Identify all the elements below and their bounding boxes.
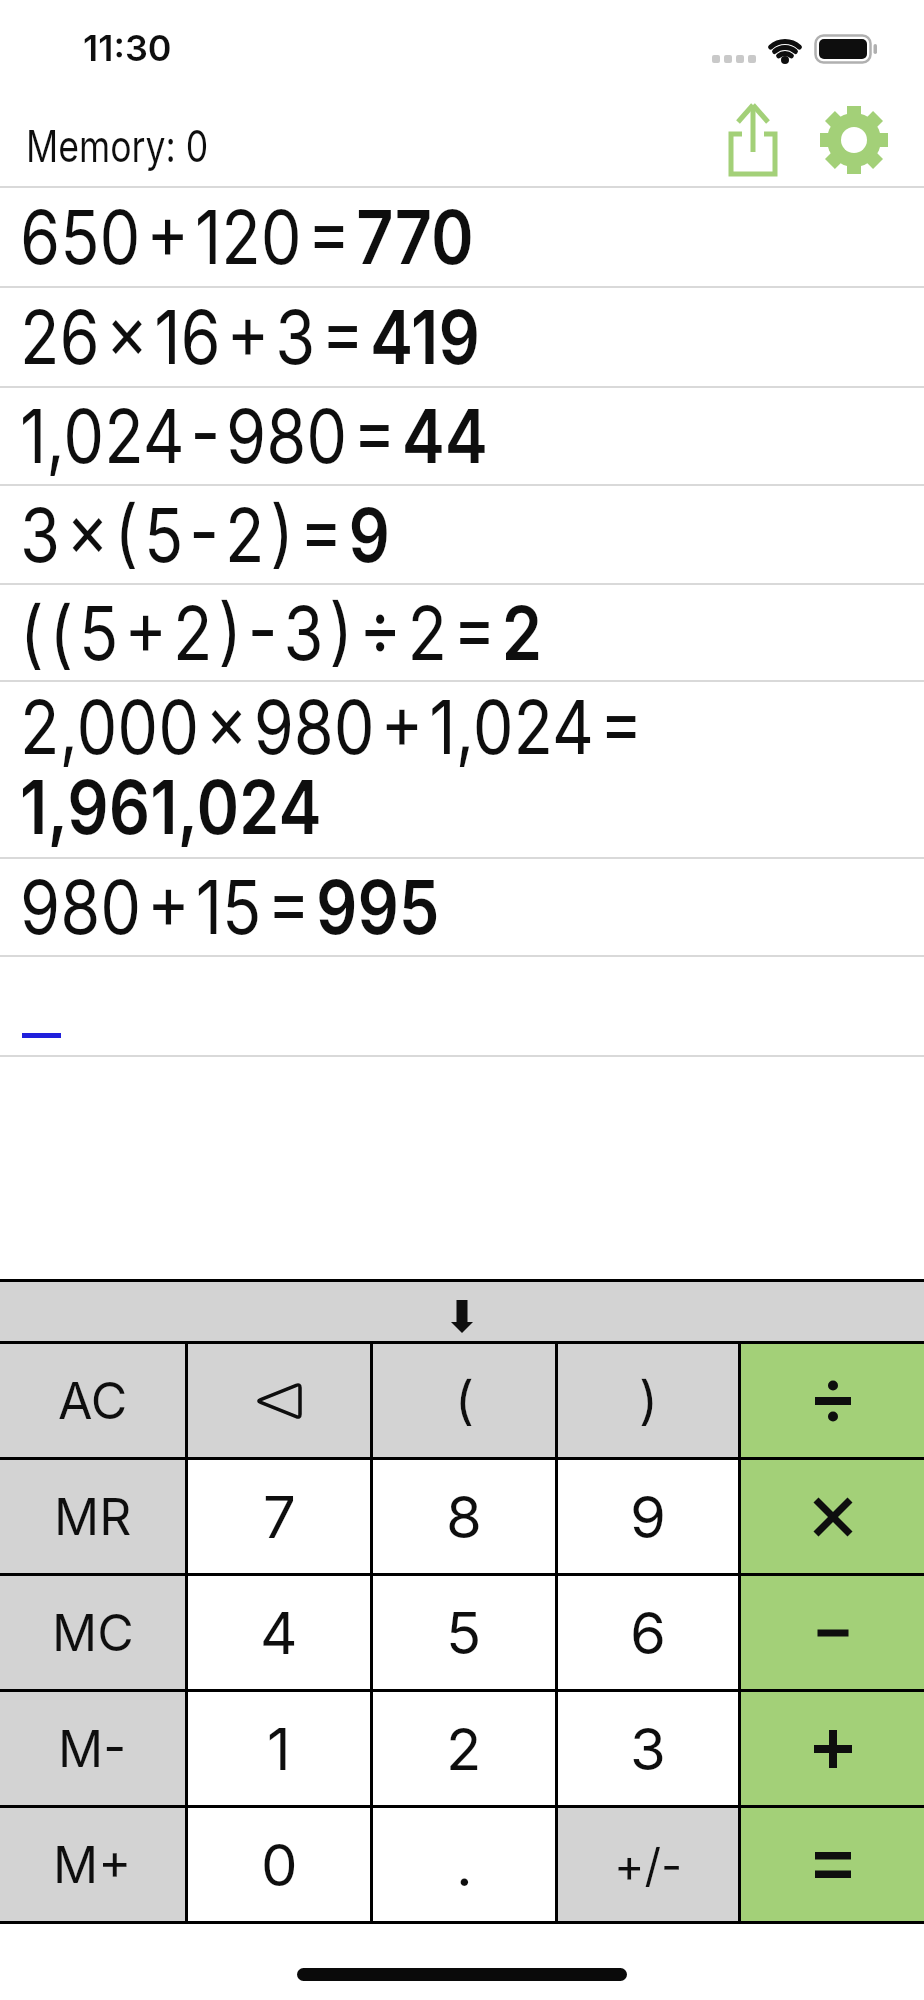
staticText: 3: [630, 1714, 666, 1784]
button[interactable]: [741, 1692, 924, 1805]
staticText: 2,000 × 980 + 1,024 =: [20, 682, 643, 770]
staticText: 9: [630, 1482, 666, 1552]
button[interactable]: 0: [188, 1808, 370, 1921]
staticText: M+: [53, 1835, 132, 1895]
button[interactable]: 2: [373, 1692, 555, 1805]
button[interactable]: [0, 1282, 924, 1341]
staticText: 2: [446, 1714, 482, 1784]
button[interactable]: 5: [373, 1576, 555, 1689]
staticText: 26 × 16 + 3 = 419: [20, 292, 480, 382]
staticText: +/-: [614, 1837, 683, 1893]
button[interactable]: [188, 1344, 370, 1457]
staticText: MR: [54, 1487, 132, 1547]
staticText: 5: [446, 1598, 482, 1668]
staticText: ): [639, 1369, 658, 1432]
button[interactable]: 9: [558, 1460, 738, 1573]
staticText: AC: [58, 1371, 128, 1431]
staticText: ( ( 5 + 2 ) - 3 ) ÷ 2 = 2: [20, 588, 542, 678]
button[interactable]: [741, 1460, 924, 1573]
button[interactable]: M+: [0, 1808, 185, 1921]
button[interactable]: 7: [188, 1460, 370, 1573]
button[interactable]: 3: [558, 1692, 738, 1805]
button[interactable]: .: [373, 1808, 555, 1921]
staticText: (: [455, 1369, 474, 1432]
staticText: 11:30: [83, 26, 172, 70]
staticText: 0: [261, 1830, 298, 1900]
button[interactable]: [741, 1344, 924, 1457]
staticText: 980 + 15 = 995: [20, 862, 440, 952]
staticText: 3 × ( 5 - 2 ) = 9: [20, 490, 390, 580]
staticText: 1: [267, 1714, 291, 1784]
button[interactable]: 4: [188, 1576, 370, 1689]
button[interactable]: MC: [0, 1576, 185, 1689]
button[interactable]: [725, 102, 781, 182]
staticText: Memory: 0: [26, 119, 209, 172]
button[interactable]: ): [558, 1344, 738, 1457]
button[interactable]: AC: [0, 1344, 185, 1457]
staticText: MC: [52, 1603, 134, 1663]
button[interactable]: 8: [373, 1460, 555, 1573]
staticText: 1,024 - 980 = 44: [20, 391, 488, 481]
staticText: 7: [263, 1482, 296, 1552]
button[interactable]: (: [373, 1344, 555, 1457]
staticText: 1,961,024: [20, 762, 322, 847]
button[interactable]: +/-: [558, 1808, 738, 1921]
staticText: M-: [58, 1719, 127, 1779]
staticText: 650 + 120 = 770: [20, 192, 474, 282]
button[interactable]: M-: [0, 1692, 185, 1805]
button[interactable]: MR: [0, 1460, 185, 1573]
staticText: .: [456, 1830, 473, 1900]
staticText: 4: [260, 1598, 298, 1668]
button[interactable]: [741, 1808, 924, 1921]
staticText: 6: [630, 1598, 666, 1668]
button[interactable]: [818, 104, 890, 176]
button[interactable]: 1: [188, 1692, 370, 1805]
button[interactable]: [741, 1576, 924, 1689]
staticText: 8: [446, 1482, 482, 1552]
button[interactable]: 6: [558, 1576, 738, 1689]
